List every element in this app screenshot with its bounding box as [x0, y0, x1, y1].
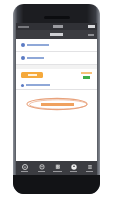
- button[interactable]: [21, 81, 92, 89]
- button[interactable]: [21, 52, 92, 64]
- button[interactable]: [21, 39, 92, 51]
- button[interactable]: Catalog: [49, 161, 65, 175]
- button[interactable]: Home: [16, 161, 33, 175]
- button[interactable]: More options: [16, 30, 97, 39]
- button[interactable]: Alerts: [33, 161, 49, 175]
- button[interactable]: [21, 72, 43, 78]
- button[interactable]: Account: [65, 161, 81, 175]
- button[interactable]: More: [81, 161, 97, 175]
- button[interactable]: [25, 97, 89, 111]
